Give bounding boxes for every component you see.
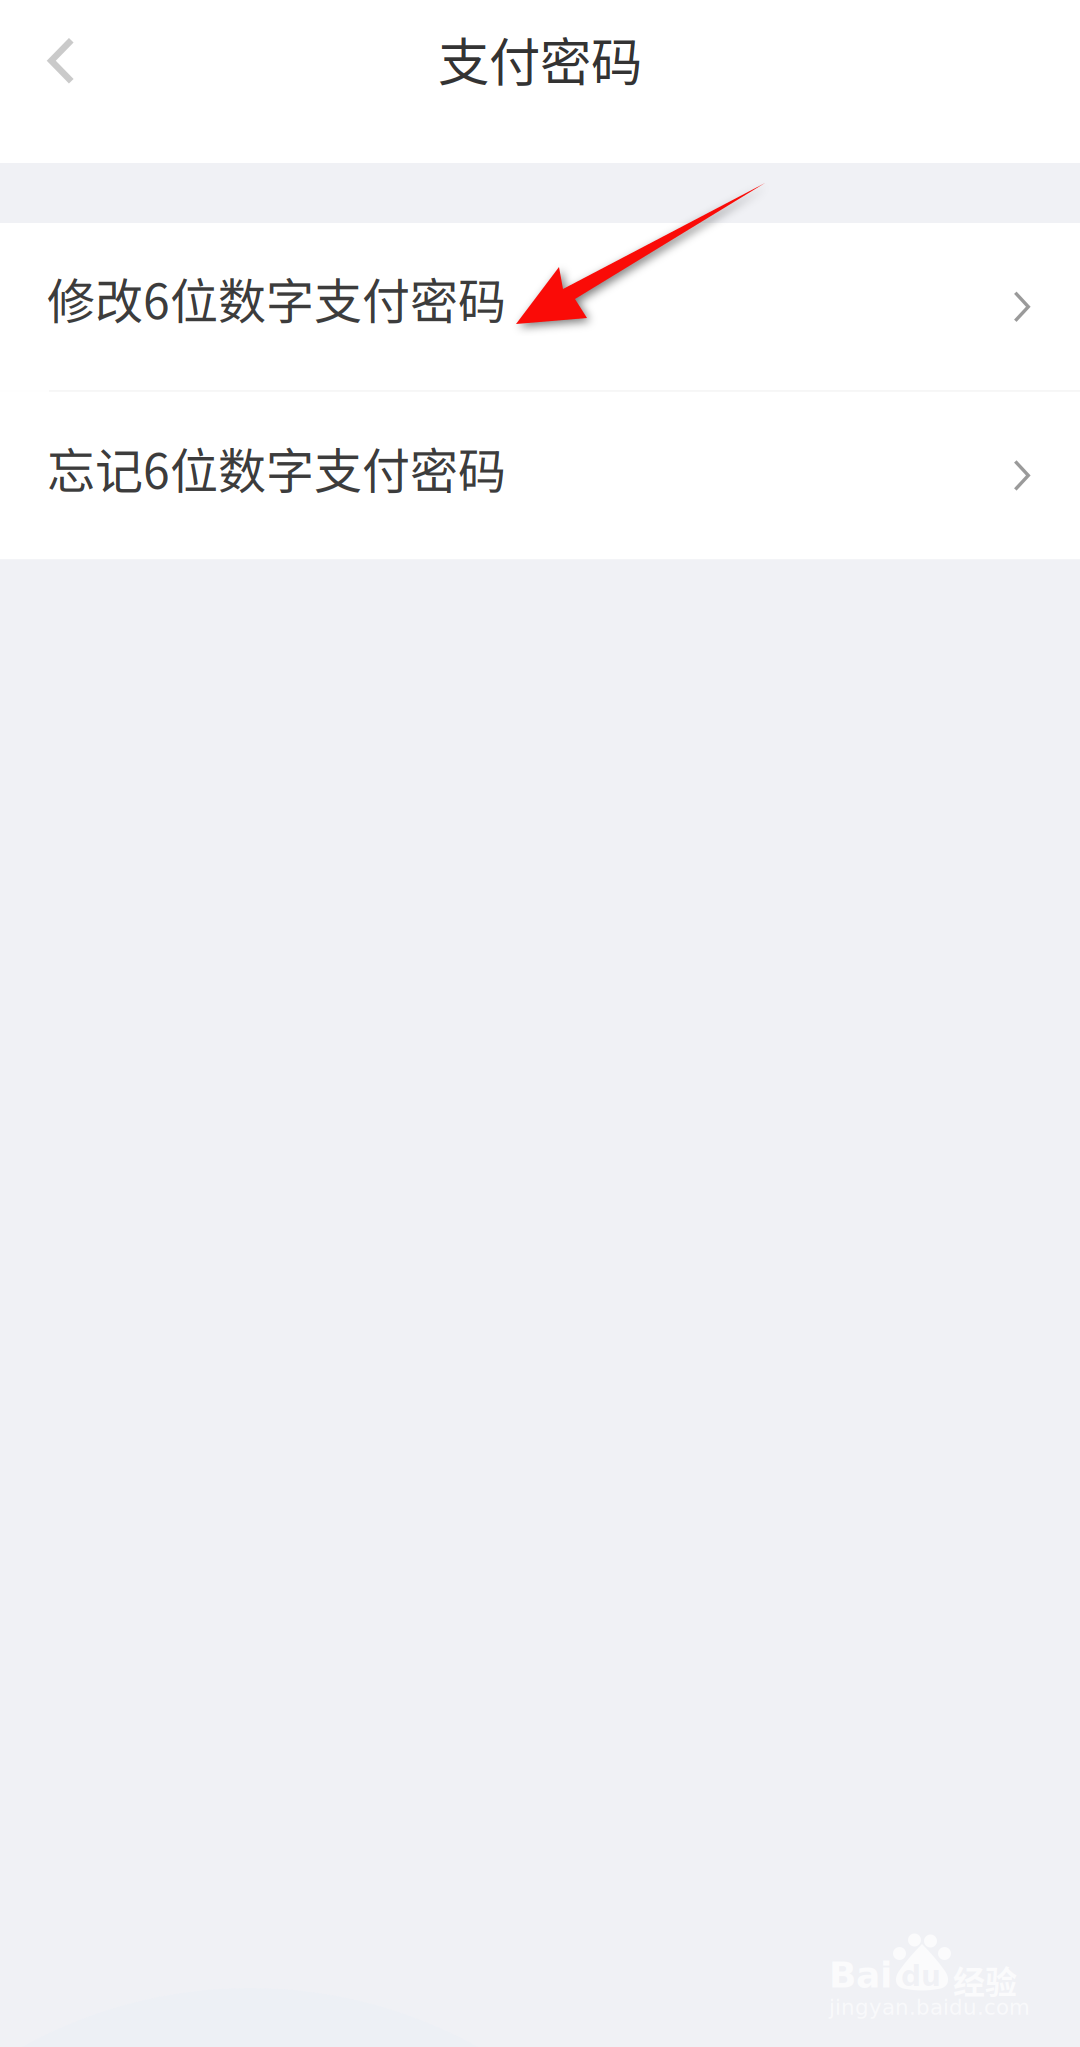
staticText: du — [901, 1960, 941, 1993]
staticText: 经验 — [953, 1957, 1017, 2003]
staticText: 支付密码 — [438, 21, 642, 96]
staticText: 修改6位数字支付密码 — [47, 263, 506, 332]
button[interactable]: 修改6位数字支付密码 — [0, 223, 1080, 390]
staticText: 忘记6位数字支付密码 — [47, 433, 506, 502]
button[interactable]: Back — [0, 0, 130, 163]
button[interactable]: 忘记6位数字支付密码 — [0, 392, 1080, 559]
staticText: jingyan.baidu.com — [829, 1995, 1030, 2020]
staticText: Bai — [829, 1954, 892, 1996]
